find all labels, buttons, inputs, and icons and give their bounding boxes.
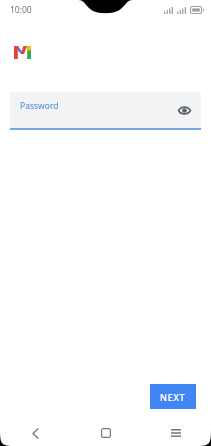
button[interactable]: Show password [174,100,194,120]
button[interactable]: NEXT [150,384,196,409]
staticText: Password [20,100,59,112]
button[interactable]: Back [0,420,71,446]
button[interactable]: Password [10,92,201,128]
button[interactable]: Home [71,420,141,446]
staticText: NEXT [160,391,186,403]
button[interactable]: Recent apps [141,420,211,446]
staticText: 10:00 [10,4,32,16]
